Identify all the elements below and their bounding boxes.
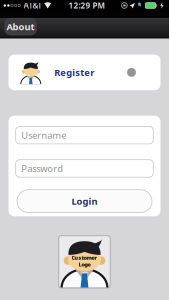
staticText: 12:29 PM bbox=[68, 0, 104, 11]
staticText: Register bbox=[54, 66, 94, 79]
staticText: Login bbox=[71, 195, 97, 207]
staticText: Logo bbox=[78, 261, 90, 268]
staticText: Username bbox=[21, 129, 66, 141]
staticText: AT&T bbox=[24, 0, 42, 11]
staticText: Customer bbox=[71, 254, 97, 261]
staticText: About bbox=[6, 20, 34, 33]
button[interactable]: About bbox=[5, 18, 36, 35]
button[interactable]: Register bbox=[8, 55, 160, 90]
button[interactable]: Login bbox=[16, 190, 153, 213]
staticText: Password bbox=[21, 162, 63, 175]
